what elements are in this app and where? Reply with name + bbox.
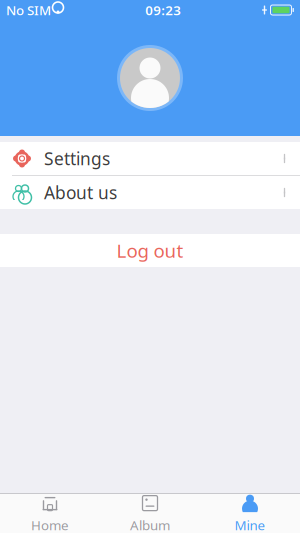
staticText: About us [44, 181, 117, 204]
staticText: Home [31, 516, 69, 533]
staticText: Mine [234, 516, 265, 533]
button[interactable]: Log out [0, 234, 300, 267]
staticText: 09:23 [145, 1, 181, 19]
staticText: Settings [44, 147, 110, 170]
button[interactable]: Settings [0, 142, 300, 175]
button[interactable]: Album [100, 494, 200, 532]
staticText: Log out [116, 238, 183, 263]
button[interactable]: Home [0, 494, 100, 532]
button[interactable]: About us [0, 176, 300, 209]
staticText: Album [130, 516, 170, 533]
button[interactable]: Mine [200, 494, 300, 532]
staticText: No SIM [6, 1, 51, 19]
